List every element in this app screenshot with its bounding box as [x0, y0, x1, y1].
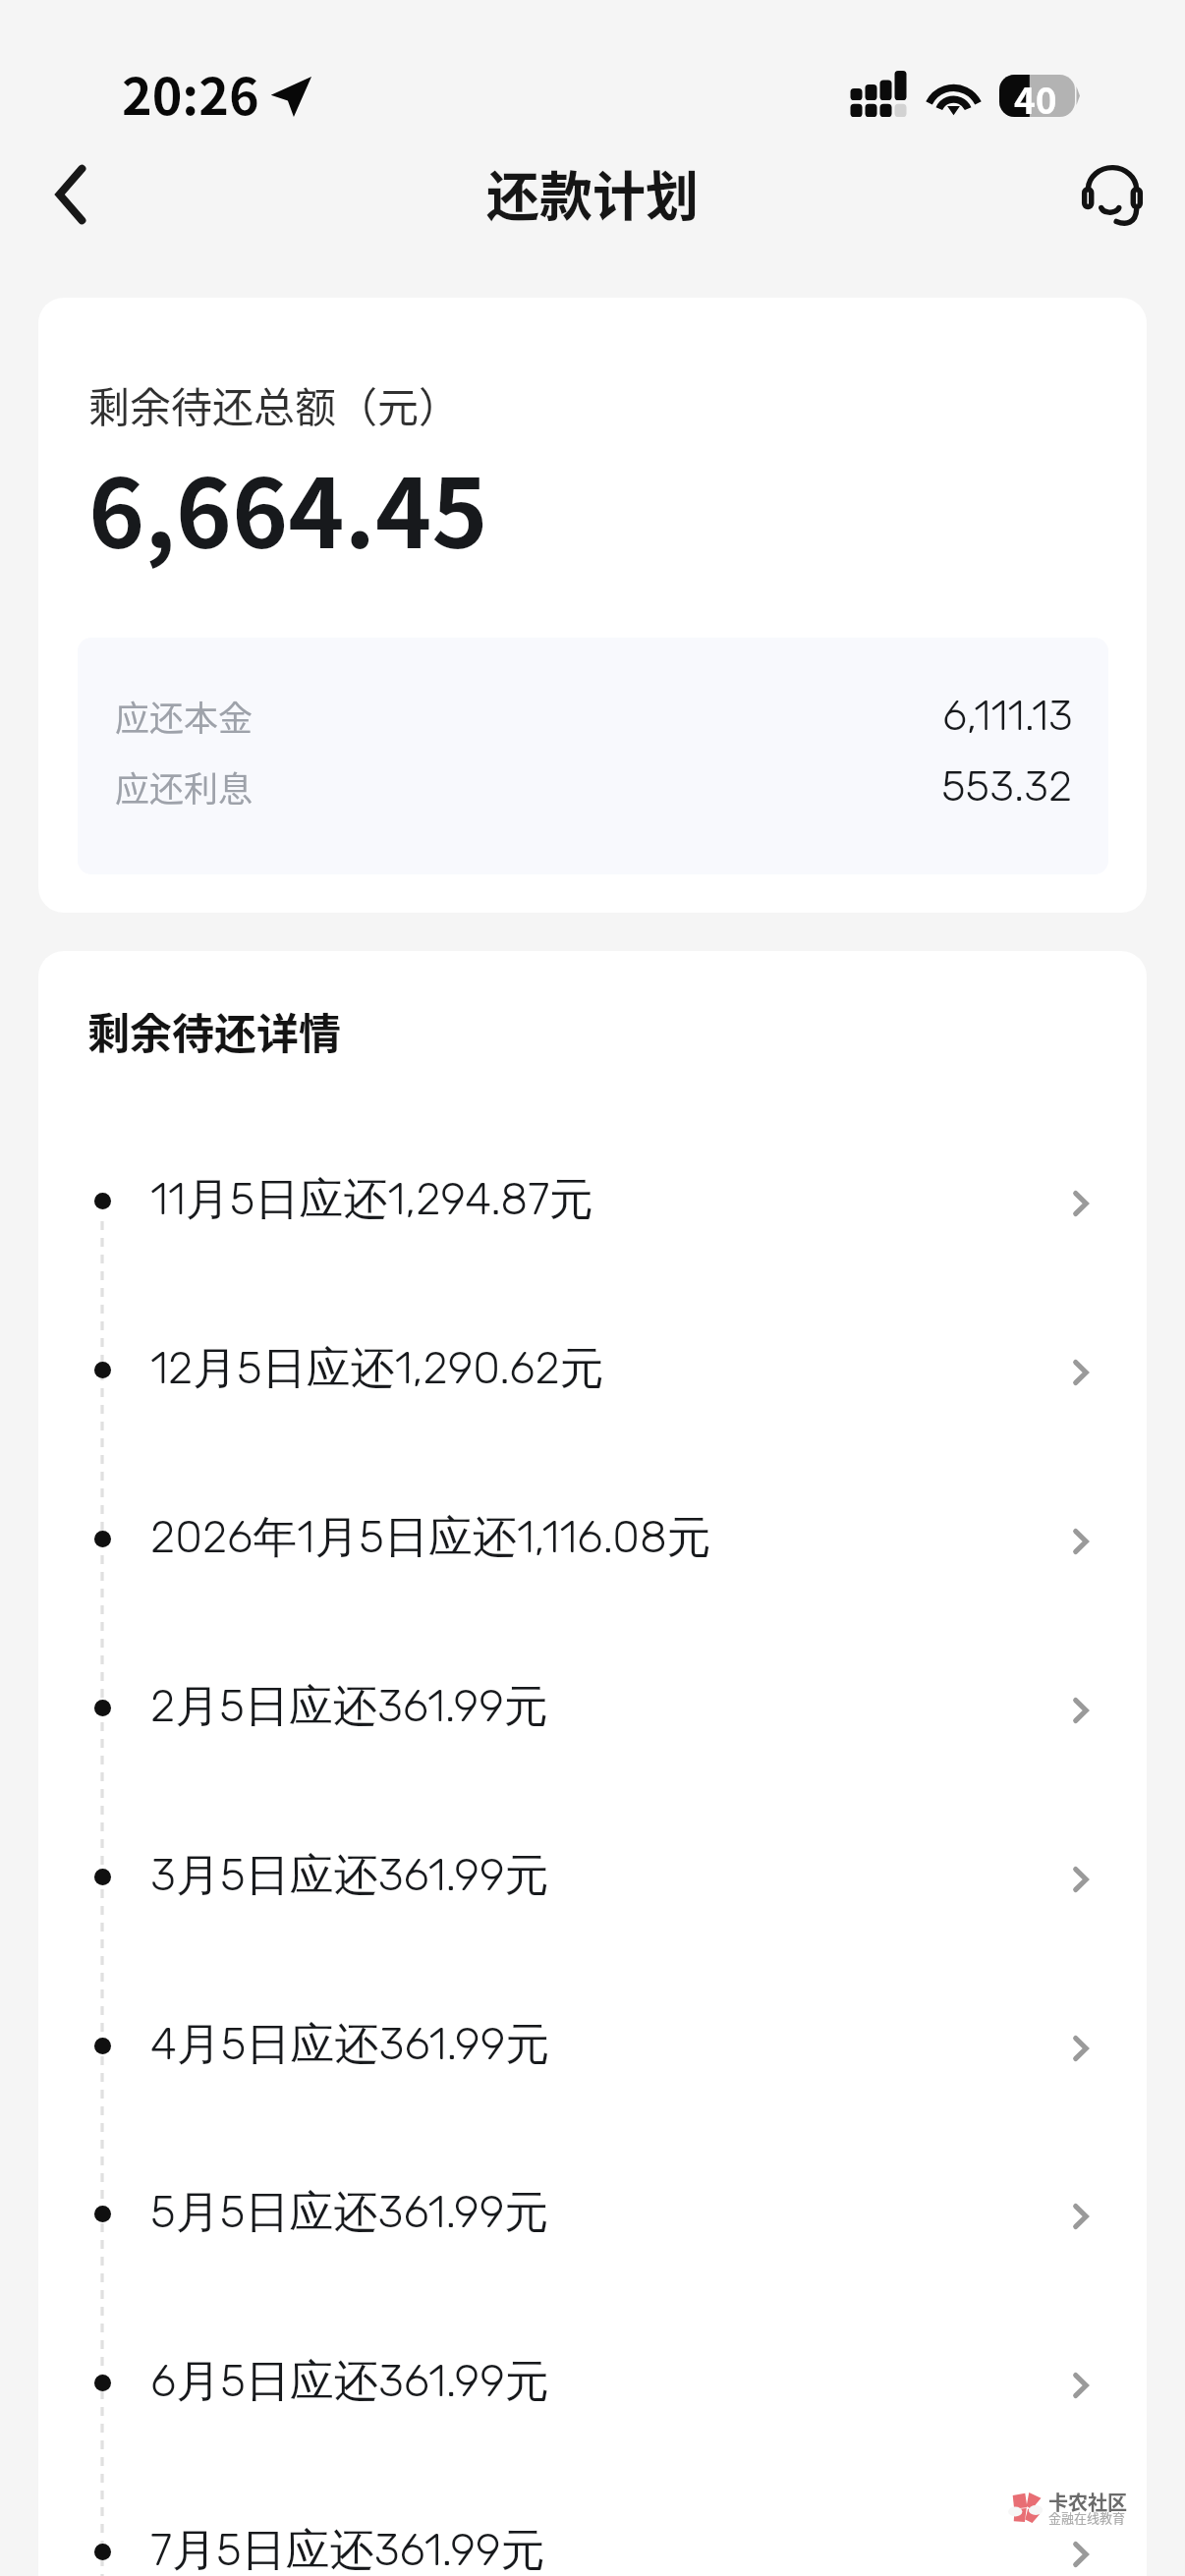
- button[interactable]: 6月5日应还361.99元: [38, 2298, 1147, 2467]
- button[interactable]: 2月5日应还361.99元: [38, 1623, 1147, 1792]
- staticText: 2月5日应还361.99元: [150, 1679, 548, 1735]
- staticText: 12月5日应还1,290.62元: [150, 1341, 604, 1397]
- button[interactable]: 2026年1月5日应还1,116.08元: [38, 1454, 1147, 1623]
- button[interactable]: 11月5日应还1,294.87元: [38, 1116, 1147, 1285]
- button[interactable]: Back: [23, 146, 119, 243]
- staticText: 6,111.13: [942, 691, 1073, 741]
- staticText: 4月5日应还361.99元: [150, 2017, 550, 2073]
- button[interactable]: 12月5日应还1,290.62元: [38, 1285, 1147, 1454]
- staticText: 金融在线教育: [1048, 2508, 1126, 2527]
- staticText: 3月5日应还361.99元: [150, 1848, 549, 1904]
- staticText: 553.32: [941, 761, 1073, 812]
- staticText: 40: [1014, 72, 1057, 114]
- staticText: 6月5日应还361.99元: [150, 2354, 549, 2410]
- staticText: 还款计划: [0, 154, 1185, 231]
- staticText: 应还利息: [115, 761, 254, 812]
- staticText: 20:26: [122, 56, 259, 130]
- button[interactable]: 3月5日应还361.99元: [38, 1792, 1147, 1961]
- button[interactable]: 5月5日应还361.99元: [38, 2129, 1147, 2298]
- staticText: 11月5日应还1,294.87元: [150, 1172, 594, 1228]
- staticText: 剩余待还详情: [87, 1000, 341, 1061]
- staticText: 剩余待还总额（元）: [88, 374, 461, 434]
- staticText: 5月5日应还361.99元: [150, 2185, 549, 2241]
- staticText: 6,664.45: [88, 437, 488, 575]
- staticText: 7月5日应还361.99元: [150, 2523, 545, 2576]
- staticText: 应还本金: [115, 691, 254, 741]
- staticText: 2026年1月5日应还1,116.08元: [150, 1510, 711, 1566]
- button[interactable]: Customer service: [1064, 145, 1160, 242]
- staticText: 卡农社区: [1048, 2488, 1127, 2516]
- button[interactable]: 4月5日应还361.99元: [38, 1961, 1147, 2130]
- button[interactable]: 7月5日应还361.99元: [38, 2467, 1147, 2576]
